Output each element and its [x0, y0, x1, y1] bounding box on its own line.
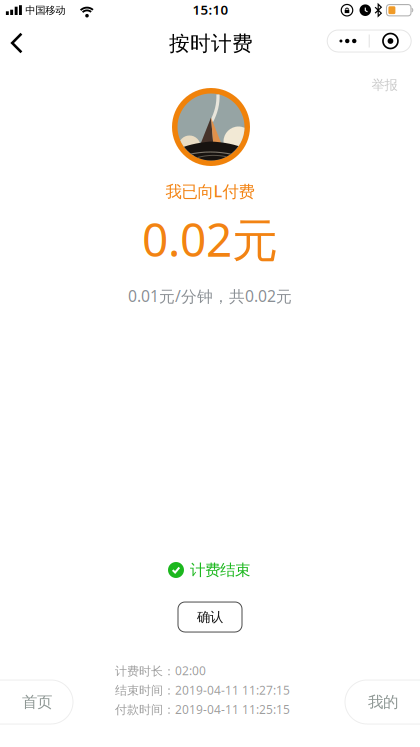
staticText: 0.01元/分钟，共0.02元 [128, 285, 292, 307]
button[interactable]: Close [370, 30, 411, 52]
staticText: 中国移动 [25, 4, 65, 17]
staticText: 15:10 [192, 1, 228, 18]
staticText: 举报 [371, 77, 397, 93]
button[interactable]: 确认 [178, 602, 242, 632]
button[interactable]: 我的 [345, 680, 420, 724]
staticText: 确认 [197, 609, 223, 625]
button[interactable]: 首页 [0, 680, 73, 724]
staticText: 0.02元 [142, 208, 278, 270]
staticText: 我已向L付费 [165, 180, 254, 202]
staticText: 计费结束 [190, 560, 250, 580]
staticText: 按时计费 [169, 30, 253, 56]
button[interactable]: 举报 [367, 73, 401, 97]
button[interactable]: More [327, 30, 369, 52]
staticText: 付款时间：2019-04-11 11:25:15 [115, 701, 290, 717]
staticText: 计费时长：02:00 [115, 663, 206, 679]
staticText: 我的 [368, 692, 398, 712]
staticText: 首页 [22, 692, 52, 712]
button[interactable]: Back [3, 24, 31, 62]
staticText: 结束时间：2019-04-11 11:27:15 [115, 682, 290, 698]
